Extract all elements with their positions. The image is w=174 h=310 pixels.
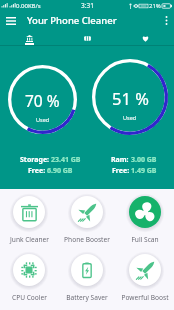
button[interactable]: Open navigation menu — [0, 11, 22, 30]
button[interactable]: Phone Booster — [58, 194, 116, 244]
staticText: Battery Saver — [66, 293, 108, 302]
button[interactable]: Full Scan — [116, 194, 174, 244]
staticText: Free: — [112, 166, 131, 176]
staticText: 3.00 GB — [131, 155, 157, 165]
button[interactable]: Favourites tab — [116, 30, 174, 46]
button[interactable]: Apps tab — [58, 30, 116, 46]
button[interactable]: CPU Cooler — [0, 252, 58, 302]
button[interactable]: Clean tab — [0, 30, 58, 46]
staticText: 3:31 — [81, 1, 94, 10]
staticText: CPU Cooler — [12, 293, 47, 302]
staticText: Free: — [28, 166, 47, 176]
staticText: Full Scan — [131, 235, 159, 244]
staticText: Junk Cleaner — [10, 235, 49, 244]
staticText: Used — [36, 116, 50, 123]
button[interactable]: Powerful Boost — [116, 252, 174, 302]
staticText: 0.00KB/s — [16, 2, 41, 10]
staticText: 23.41 GB — [51, 155, 81, 165]
staticText: Your Phone Cleaner — [27, 14, 117, 27]
staticText: Ram: — [111, 155, 131, 165]
staticText: Storage: — [20, 155, 51, 165]
staticText: Phone Booster — [64, 235, 110, 244]
staticText: 1.49 GB — [131, 166, 157, 176]
button[interactable]: More options — [158, 11, 174, 30]
staticText: 6.90 GB — [47, 166, 73, 176]
staticText: 51 % — [112, 87, 149, 109]
staticText: Powerful Boost — [121, 293, 169, 302]
staticText: 21% — [149, 2, 161, 10]
button[interactable]: Battery Saver — [58, 252, 116, 302]
button[interactable]: Junk Cleaner — [0, 194, 58, 244]
staticText: Used — [123, 114, 137, 121]
staticText: 70 % — [25, 90, 60, 111]
